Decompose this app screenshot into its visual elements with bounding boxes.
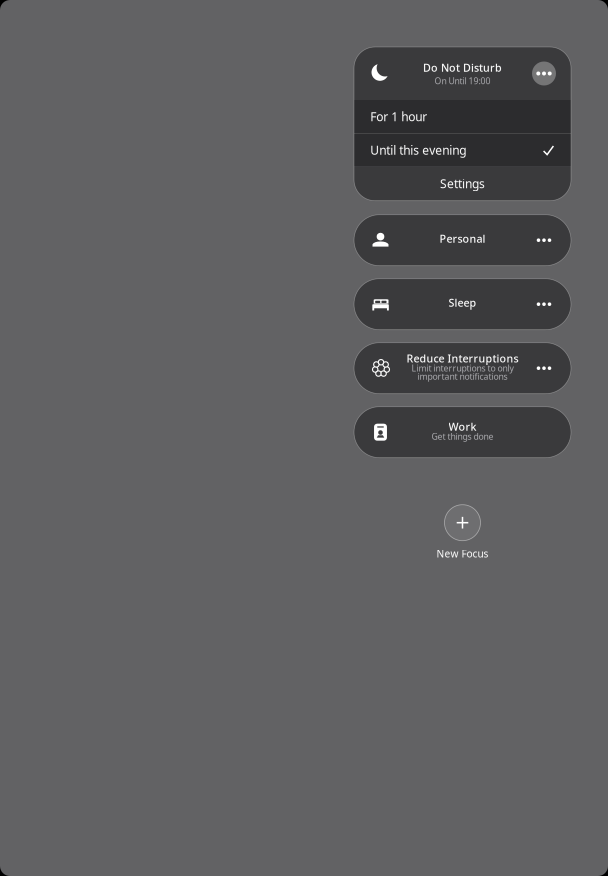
staticText: Personal xyxy=(439,231,485,246)
button[interactable]: Sleep xyxy=(354,279,571,330)
button[interactable]: For 1 hour xyxy=(354,100,571,133)
button[interactable]: Do Not Disturb options xyxy=(532,61,556,85)
staticText: Work xyxy=(448,419,476,434)
button[interactable]: Sleep options xyxy=(532,292,556,316)
staticText: Limit interruptions to only xyxy=(411,362,513,374)
staticText: On Until 19:00 xyxy=(434,75,490,87)
button[interactable]: Until this evening xyxy=(354,134,571,167)
staticText: Do Not Disturb xyxy=(423,60,502,75)
staticText: Reduce Interruptions xyxy=(406,351,518,365)
button[interactable]: Settings xyxy=(354,167,571,201)
button[interactable]: Personal xyxy=(354,215,571,266)
button[interactable]: Reduce Interruptions options xyxy=(532,356,556,380)
staticText: important notifications xyxy=(417,371,507,382)
staticText: Until this evening xyxy=(370,142,466,158)
staticText: For 1 hour xyxy=(370,108,427,125)
button[interactable]: New Focus xyxy=(354,505,571,560)
staticText: Sleep xyxy=(448,295,476,310)
button[interactable]: Personal options xyxy=(532,228,556,252)
staticText: Get things done xyxy=(431,430,493,442)
staticText: New Focus xyxy=(436,547,488,560)
staticText: Settings xyxy=(440,175,485,192)
button[interactable]: Work xyxy=(354,407,571,458)
button[interactable]: Reduce Interruptions xyxy=(354,343,571,394)
